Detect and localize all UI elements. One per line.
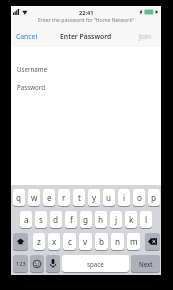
button[interactable]: Next [131, 255, 160, 272]
staticText: m [130, 236, 138, 247]
button[interactable]: w [28, 189, 40, 206]
other: Dictate [46, 255, 60, 272]
button[interactable]: v [79, 233, 92, 250]
button[interactable]: s [35, 211, 47, 228]
staticText: s [39, 214, 43, 225]
staticText: d [53, 214, 59, 225]
staticText: l [145, 214, 148, 225]
button[interactable]: p [148, 189, 160, 206]
button[interactable]: Password [11, 79, 161, 95]
button[interactable]: d [50, 211, 62, 228]
staticText: Cancel [16, 32, 38, 41]
button[interactable] [30, 255, 44, 272]
staticText: y [92, 192, 97, 203]
staticText: b [99, 236, 105, 247]
button[interactable]: r [58, 189, 70, 206]
button[interactable]: f [65, 211, 77, 228]
staticText: a [24, 214, 29, 225]
button[interactable]: i [118, 189, 130, 206]
button[interactable]: l [140, 211, 152, 228]
staticText: g [83, 214, 89, 225]
button[interactable]: k [125, 211, 137, 228]
staticText: v [83, 236, 88, 247]
button[interactable]: Join [134, 29, 161, 44]
button[interactable]: t [73, 189, 85, 206]
button[interactable]: m [127, 233, 140, 250]
other: Backspace [145, 233, 160, 250]
button[interactable]: g [80, 211, 92, 228]
button[interactable]: b [95, 233, 108, 250]
staticText: t [78, 192, 81, 203]
staticText: space [87, 260, 104, 268]
button[interactable]: a [20, 211, 32, 228]
button[interactable]: 123 [13, 255, 28, 272]
button[interactable]: x [48, 233, 60, 250]
button[interactable] [13, 233, 28, 250]
button[interactable]: n [111, 233, 124, 250]
staticText: Join [139, 32, 151, 41]
staticText: k [129, 214, 134, 225]
staticText: Username [17, 65, 48, 73]
other: Emoji [30, 255, 44, 272]
button[interactable] [145, 233, 160, 250]
staticText: Enter Password [60, 32, 112, 41]
staticText: q [16, 192, 22, 203]
button[interactable]: space [62, 255, 129, 272]
staticText: e [47, 192, 52, 203]
staticText: Next [139, 260, 153, 268]
staticText: j [115, 214, 118, 225]
staticText: n [115, 236, 121, 247]
staticText: f [70, 214, 73, 225]
staticText: o [137, 192, 142, 203]
button[interactable]: o [133, 189, 145, 206]
staticText: 123 [16, 260, 26, 268]
staticText: Enter the password for “Home Network” [38, 17, 134, 24]
button[interactable]: c [63, 233, 76, 250]
staticText: p [151, 192, 157, 203]
button[interactable]: e [43, 189, 55, 206]
button[interactable]: y [88, 189, 100, 206]
staticText: c [68, 236, 72, 247]
staticText: r [62, 192, 66, 203]
staticText: i [123, 192, 126, 203]
button[interactable]: Username [11, 61, 161, 77]
button[interactable]: h [95, 211, 107, 228]
staticText: w [31, 192, 38, 203]
staticText: x [52, 236, 57, 247]
button[interactable]: u [103, 189, 115, 206]
staticText: h [98, 214, 104, 225]
button[interactable]: q [13, 189, 25, 206]
button[interactable]: j [110, 211, 122, 228]
staticText: u [106, 192, 112, 203]
staticText: 22:41 [79, 9, 94, 17]
button[interactable]: Cancel [11, 29, 43, 44]
staticText: z [37, 236, 41, 247]
button[interactable]: z [33, 233, 45, 250]
staticText: Password [17, 83, 45, 91]
other: Shift [13, 233, 28, 250]
button[interactable] [46, 255, 60, 272]
